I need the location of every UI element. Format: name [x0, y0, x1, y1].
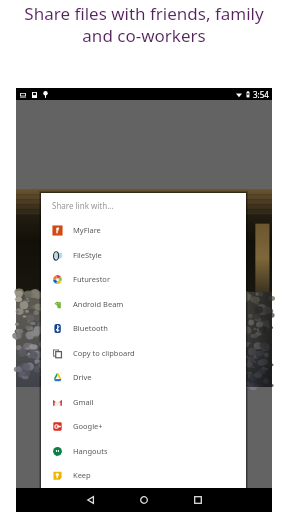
button[interactable]: Bluetooth	[41, 316, 246, 340]
button[interactable]: Home	[117, 488, 171, 512]
staticText: Gmail	[73, 397, 94, 407]
button[interactable]: Drive	[41, 365, 246, 389]
button[interactable]: Futurestor	[41, 267, 246, 291]
button[interactable]: Copy to clipboard	[41, 341, 246, 365]
staticText: Share files with friends, family and co-…	[24, 2, 264, 47]
staticText: Copy to clipboard	[73, 348, 135, 358]
staticText: Hangouts	[73, 446, 108, 456]
staticText: Keep	[73, 470, 91, 480]
staticText: Android Beam	[73, 299, 124, 309]
staticText: FileStyle	[73, 250, 102, 260]
button[interactable]: Back	[63, 488, 117, 512]
button[interactable]: FileStyle	[41, 243, 246, 267]
staticText: 3:54	[253, 89, 269, 100]
button[interactable]: Hangouts	[41, 439, 246, 463]
button[interactable]: MyFlare	[41, 218, 246, 242]
staticText: MyFlare	[73, 225, 101, 235]
button[interactable]: Recent apps	[171, 488, 225, 512]
button[interactable]: Android Beam	[41, 292, 246, 316]
staticText: Drive	[73, 372, 92, 382]
staticText: Share link with...	[52, 200, 114, 211]
staticText: Google+	[73, 421, 103, 431]
button[interactable]: Google+	[41, 414, 246, 438]
button[interactable]: Gmail	[41, 390, 246, 414]
staticText: Futurestor	[73, 274, 110, 284]
button[interactable]: Keep	[41, 463, 246, 487]
staticText: Bluetooth	[73, 323, 108, 333]
